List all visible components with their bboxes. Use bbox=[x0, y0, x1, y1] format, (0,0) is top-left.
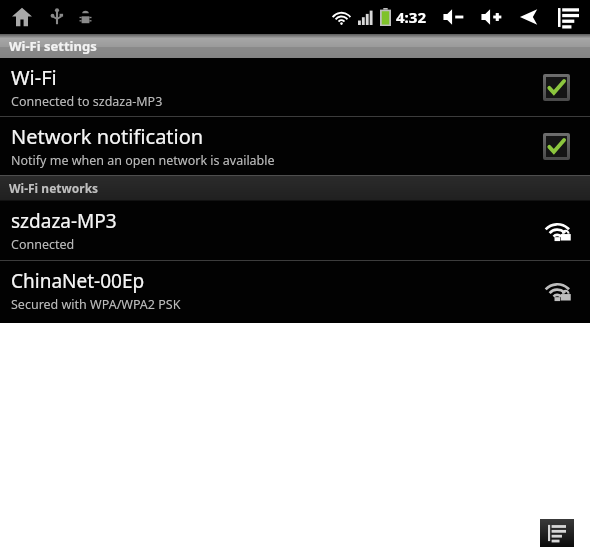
button[interactable]: Menu bbox=[540, 519, 574, 547]
button[interactable]: Volume up bbox=[476, 1, 508, 33]
button[interactable]: Back bbox=[514, 1, 546, 33]
button[interactable]: Volume down bbox=[438, 1, 470, 33]
button[interactable]: ChinaNet-00Ep bbox=[0, 261, 590, 320]
staticText: Connected bbox=[11, 236, 75, 253]
staticText: Network notification bbox=[11, 123, 204, 150]
staticText: szdaza-MP3 bbox=[11, 208, 117, 234]
button[interactable]: Menu bbox=[552, 1, 584, 33]
staticText: ChinaNet-00Ep bbox=[11, 268, 145, 294]
staticText: 4:32 bbox=[396, 7, 426, 27]
staticText: Secured with WPA/WPA2 PSK bbox=[11, 296, 181, 313]
staticText: Notify me when an open network is availa… bbox=[11, 152, 275, 169]
button[interactable]: szdaza-MP3 bbox=[0, 201, 590, 260]
staticText: Wi-Fi settings bbox=[9, 37, 97, 55]
button[interactable]: Home bbox=[8, 3, 36, 31]
staticText: Wi-Fi bbox=[11, 64, 57, 91]
staticText: Connected to szdaza-MP3 bbox=[11, 93, 163, 110]
button[interactable]: Wi-Fi toggle bbox=[536, 67, 576, 107]
staticText: Wi-Fi networks bbox=[9, 180, 99, 196]
button[interactable]: Network notification bbox=[0, 117, 590, 175]
button[interactable]: Wi-Fi bbox=[0, 58, 590, 116]
button[interactable]: Network notification toggle bbox=[536, 126, 576, 166]
